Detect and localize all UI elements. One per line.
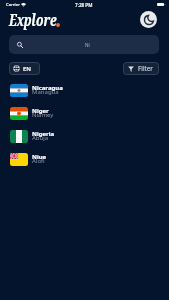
button[interactable]: Niue (0, 150, 169, 173)
staticText: 7:28 PM (75, 2, 93, 8)
staticText: Niamey (32, 111, 54, 119)
button[interactable]: Filter (123, 62, 159, 75)
staticText: Carrier (6, 2, 20, 8)
button[interactable]: Toggle dark mode (140, 11, 157, 28)
staticText: Explore (9, 9, 57, 31)
button[interactable]: Niger (0, 104, 169, 127)
staticText: Niger (32, 107, 49, 115)
staticText: Alofi (32, 157, 45, 165)
staticText: Nigeria (32, 130, 55, 138)
button[interactable]: Nigeria (0, 127, 169, 150)
staticText: EN (23, 65, 31, 73)
staticText: Ni (85, 42, 90, 48)
staticText: Niue (32, 153, 47, 161)
button[interactable]: Nicaragua (0, 81, 169, 104)
staticText: Managua (32, 88, 59, 96)
staticText: Nicaragua (32, 84, 63, 92)
staticText: Filter (138, 64, 153, 73)
button[interactable]: EN (9, 62, 40, 75)
button[interactable]: Ni (9, 35, 159, 54)
staticText: Abuja (32, 134, 49, 142)
